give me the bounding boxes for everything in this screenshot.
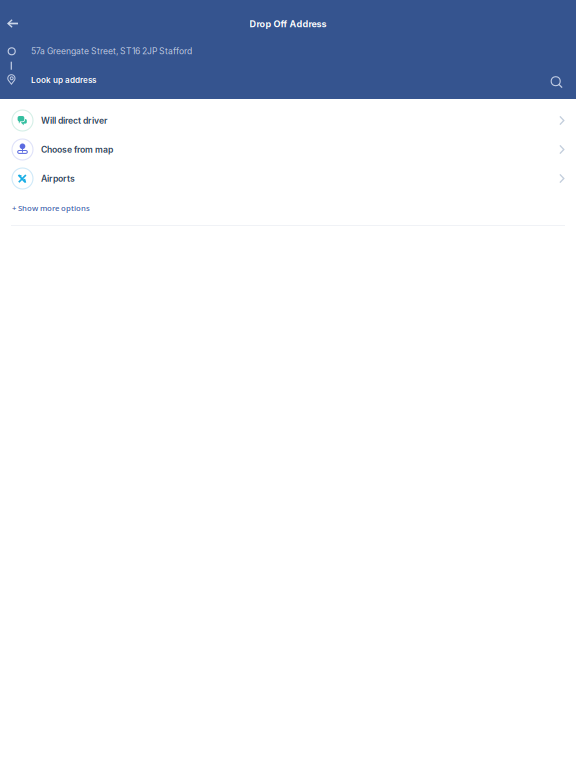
- staticText: Airports: [41, 173, 75, 184]
- staticText: Choose from map: [41, 144, 113, 155]
- button[interactable]: Back: [0, 10, 26, 36]
- staticText: Look up address: [31, 75, 96, 85]
- button[interactable]: Choose from map: [0, 135, 576, 164]
- button[interactable]: Search: [544, 69, 570, 95]
- staticText: + Show more options: [12, 203, 90, 213]
- staticText: Will direct driver: [41, 115, 107, 126]
- button[interactable]: Airports: [0, 164, 576, 193]
- staticText: 57a Greengate Street, ST16 2JP Stafford: [31, 46, 192, 56]
- button[interactable]: + Show more options: [0, 199, 90, 217]
- button[interactable]: Will direct driver: [0, 106, 576, 135]
- staticText: Drop Off Address: [249, 18, 326, 29]
